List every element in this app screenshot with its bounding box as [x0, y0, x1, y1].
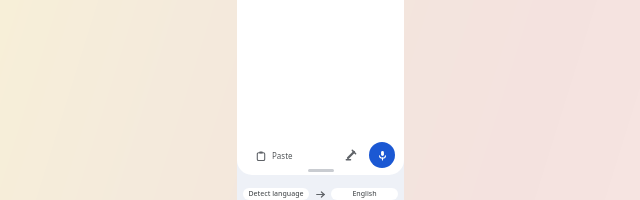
staticText: English: [352, 189, 377, 199]
staticText: Detect language: [248, 189, 304, 199]
button[interactable]: Voice input: [369, 142, 395, 168]
staticText: Paste: [272, 150, 293, 161]
button[interactable]: Swap languages: [309, 188, 331, 200]
button[interactable]: Paste: [253, 146, 296, 165]
button[interactable]: English: [331, 188, 398, 200]
button[interactable]: Handwriting input: [340, 144, 362, 166]
button[interactable]: Detect language: [243, 188, 309, 200]
